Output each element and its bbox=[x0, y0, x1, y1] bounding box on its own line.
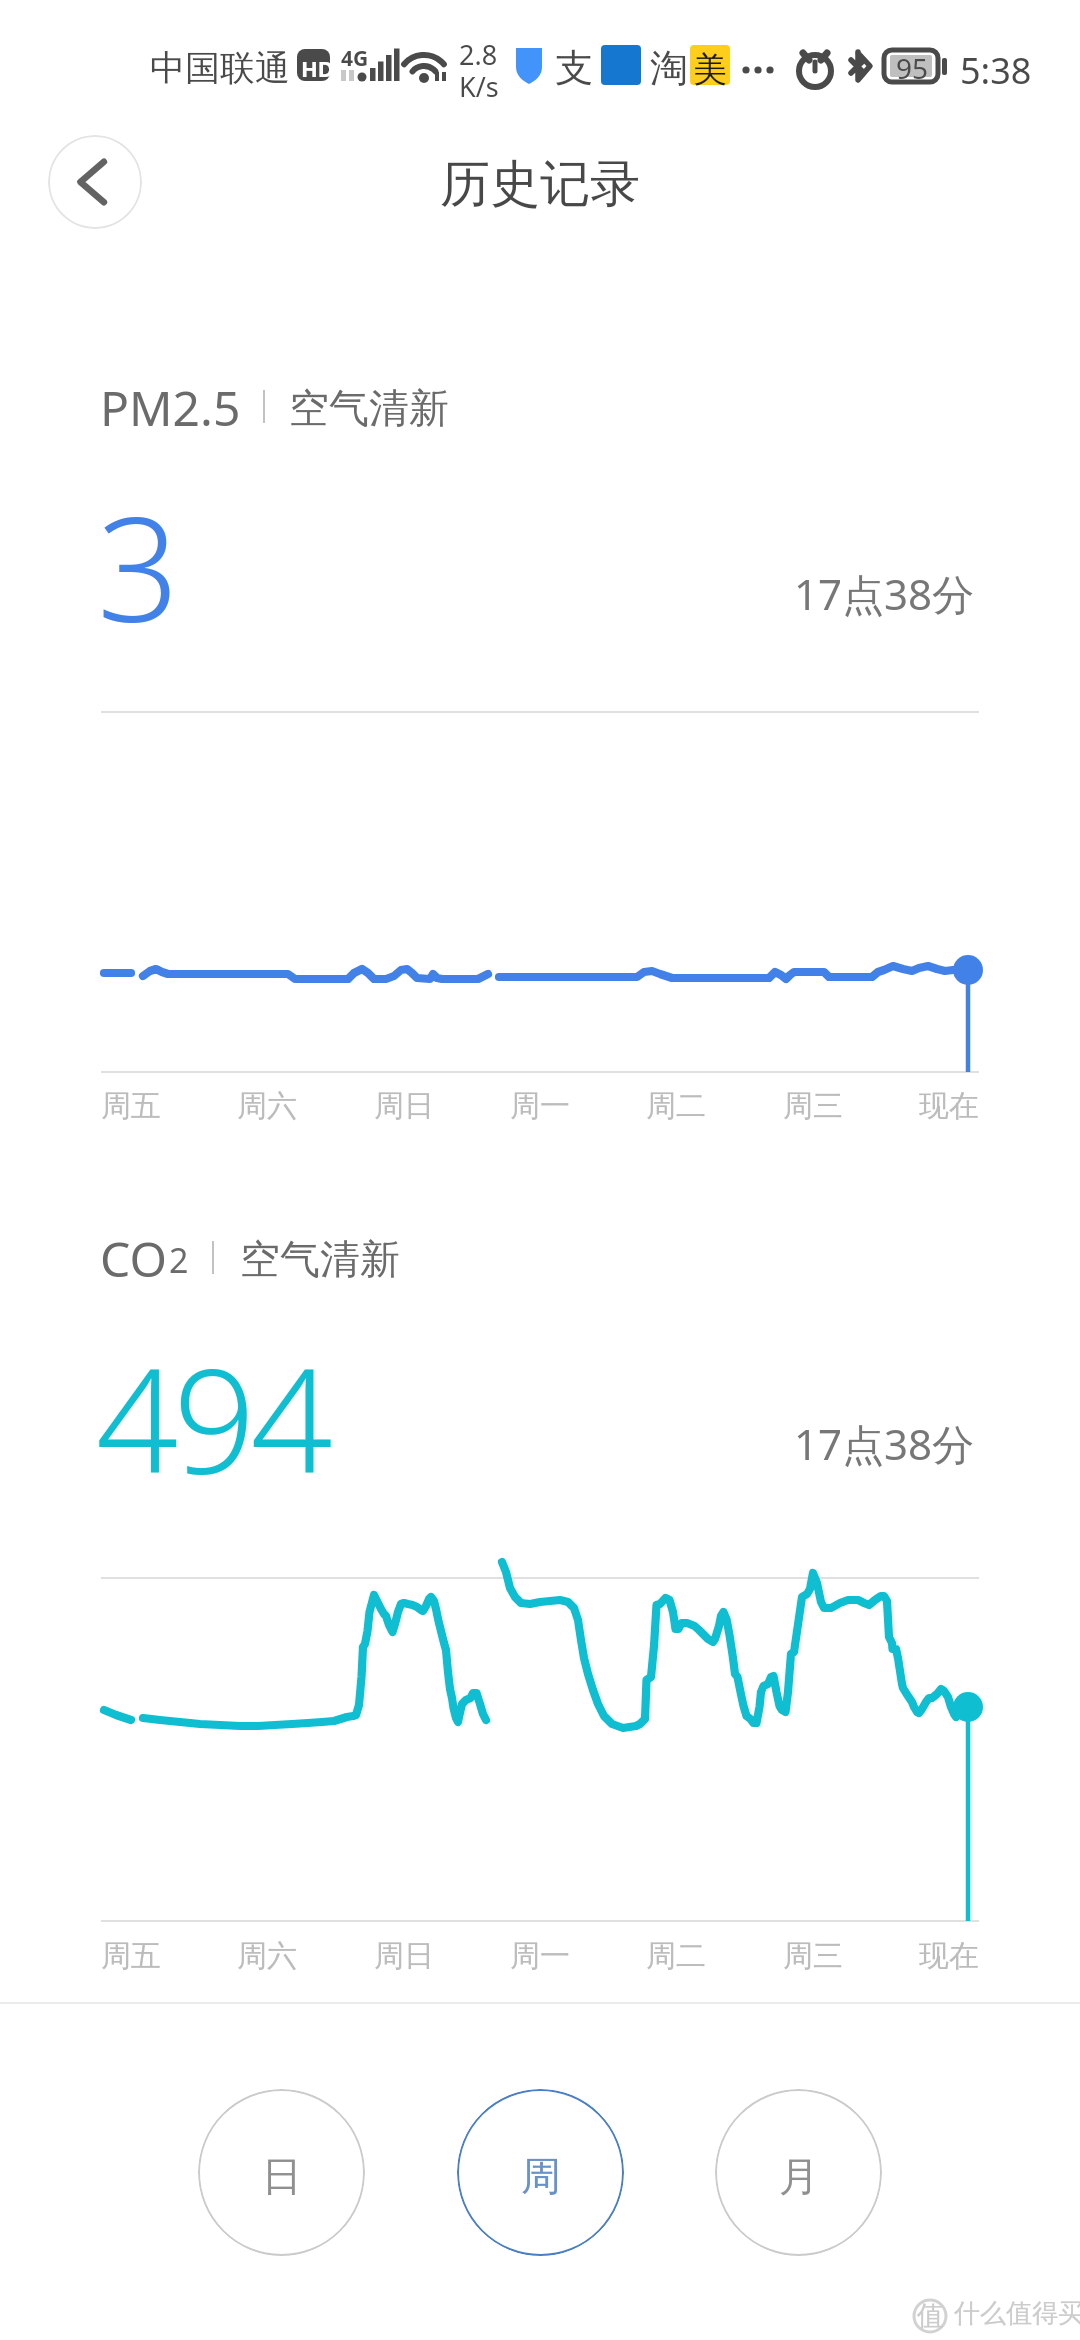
staticText: 美 bbox=[693, 48, 727, 91]
staticText: 中国联通 bbox=[150, 46, 290, 90]
staticText: 空气清新 bbox=[289, 383, 449, 433]
staticText: K/s bbox=[459, 68, 499, 105]
staticText: 淘 bbox=[650, 44, 688, 92]
staticText: 95 bbox=[896, 49, 929, 87]
staticText: 周一 bbox=[510, 1087, 570, 1125]
staticText: 4G bbox=[341, 44, 369, 73]
staticText: HD bbox=[301, 53, 334, 83]
button[interactable]: 日 bbox=[198, 2089, 365, 2256]
button[interactable]: 周 bbox=[457, 2089, 624, 2256]
staticText: 17点38分 bbox=[794, 1415, 975, 1472]
staticText: 日 bbox=[262, 2151, 302, 2201]
staticText: 周三 bbox=[783, 1937, 843, 1975]
staticText: 历史记录 bbox=[440, 153, 640, 216]
button[interactable]: Back bbox=[48, 135, 142, 229]
staticText: 2 bbox=[169, 1237, 189, 1283]
staticText: 周日 bbox=[374, 1087, 434, 1125]
staticText: 周五 bbox=[101, 1937, 161, 1975]
staticText: 周六 bbox=[237, 1937, 297, 1975]
staticText: 3 bbox=[97, 468, 180, 664]
staticText: 支 bbox=[555, 44, 593, 92]
staticText: 周 bbox=[521, 2151, 561, 2201]
staticText: CO bbox=[100, 1226, 167, 1291]
staticText: 周一 bbox=[510, 1937, 570, 1975]
staticText: 什么值得买 bbox=[954, 2297, 1080, 2330]
staticText: 值 bbox=[917, 2299, 944, 2333]
staticText: 17点38分 bbox=[794, 565, 975, 622]
staticText: 5:38 bbox=[960, 46, 1032, 95]
staticText: 周三 bbox=[783, 1087, 843, 1125]
staticText: 月 bbox=[779, 2151, 819, 2201]
button[interactable]: 月 bbox=[715, 2089, 882, 2256]
staticText: 现在 bbox=[919, 1087, 979, 1125]
staticText: 周六 bbox=[237, 1087, 297, 1125]
staticText: 周二 bbox=[646, 1937, 706, 1975]
staticText: 空气清新 bbox=[240, 1234, 400, 1284]
staticText: 周五 bbox=[101, 1087, 161, 1125]
staticText: 现在 bbox=[919, 1937, 979, 1975]
staticText: 2.8 bbox=[459, 36, 498, 73]
staticText: 周日 bbox=[374, 1937, 434, 1975]
staticText: PM2.5 bbox=[100, 375, 241, 440]
staticText: 周二 bbox=[646, 1087, 706, 1125]
staticText: 494 bbox=[96, 1319, 328, 1515]
